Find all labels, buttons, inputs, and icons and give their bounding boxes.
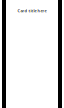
staticText: Card title here — [17, 8, 46, 13]
